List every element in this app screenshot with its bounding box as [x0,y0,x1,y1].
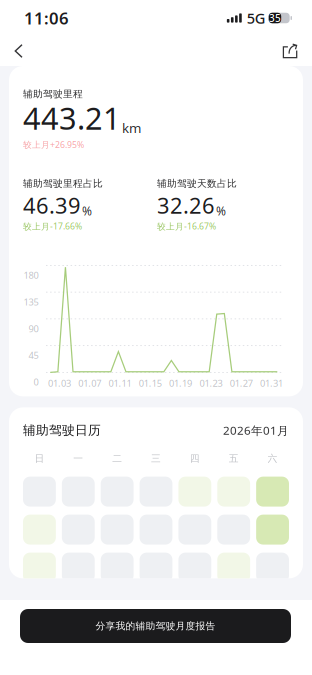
staticText: 辅助驾驶里程 [23,88,83,100]
button[interactable]: Share [268,37,298,65]
staticText: 443.21 [23,97,121,139]
staticText: 二 [112,452,122,465]
staticText: 01.15 [139,377,162,390]
staticText: 较上月+26.95% [23,139,84,150]
staticText: 六 [268,452,278,465]
staticText: 135 [23,295,38,308]
staticText: 辅助驾驶天数占比 [157,177,237,190]
staticText: 辅助驾驶日历 [23,422,101,438]
staticText: 32.26 [157,190,215,220]
staticText: 01.03 [48,377,71,390]
staticText: 11:06 [24,7,69,29]
staticText: 01.23 [199,377,222,390]
staticText: 01.11 [108,377,131,390]
staticText: 0 [33,376,38,388]
staticText: 五 [229,452,239,465]
staticText: % [216,203,226,219]
button[interactable]: 分享我的辅助驾驶月度报告 [20,609,291,643]
staticText: 45 [28,349,38,362]
button[interactable]: Back [14,37,44,65]
staticText: 一 [73,452,83,465]
staticText: % [82,203,92,219]
staticText: 35 [269,11,281,25]
staticText: 01.19 [169,377,192,390]
staticText: 01.07 [78,377,101,390]
staticText: km [122,119,141,137]
staticText: 四 [190,452,200,465]
staticText: 01.31 [260,377,283,390]
staticText: 较上月-16.67% [157,220,216,232]
staticText: 46.39 [23,190,81,220]
staticText: 2026年01月 [223,422,289,438]
staticText: 较上月-17.66% [23,220,82,232]
staticText: 日 [34,452,44,465]
staticText: 90 [28,322,38,335]
staticText: 三 [151,452,161,465]
staticText: 辅助驾驶里程占比 [23,177,103,190]
staticText: 180 [23,269,38,281]
staticText: 01.27 [230,377,253,390]
staticText: 分享我的辅助驾驶月度报告 [95,620,215,632]
staticText: 5G [247,8,266,28]
